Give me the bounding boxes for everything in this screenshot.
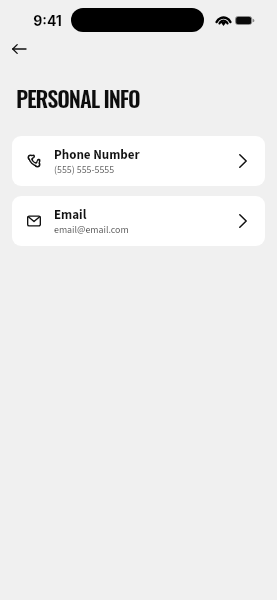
staticText: PERSONAL INFO [16,82,140,115]
button[interactable]: Phone Number [12,136,265,186]
staticText: Email [54,206,87,225]
staticText: (555) 555-5555 [54,163,115,177]
staticText: 9:41 [33,12,62,29]
button[interactable]: Back [6,36,32,62]
staticText: Phone Number [54,146,140,165]
button[interactable]: Email [12,196,265,246]
staticText: email@email.com [54,223,129,237]
